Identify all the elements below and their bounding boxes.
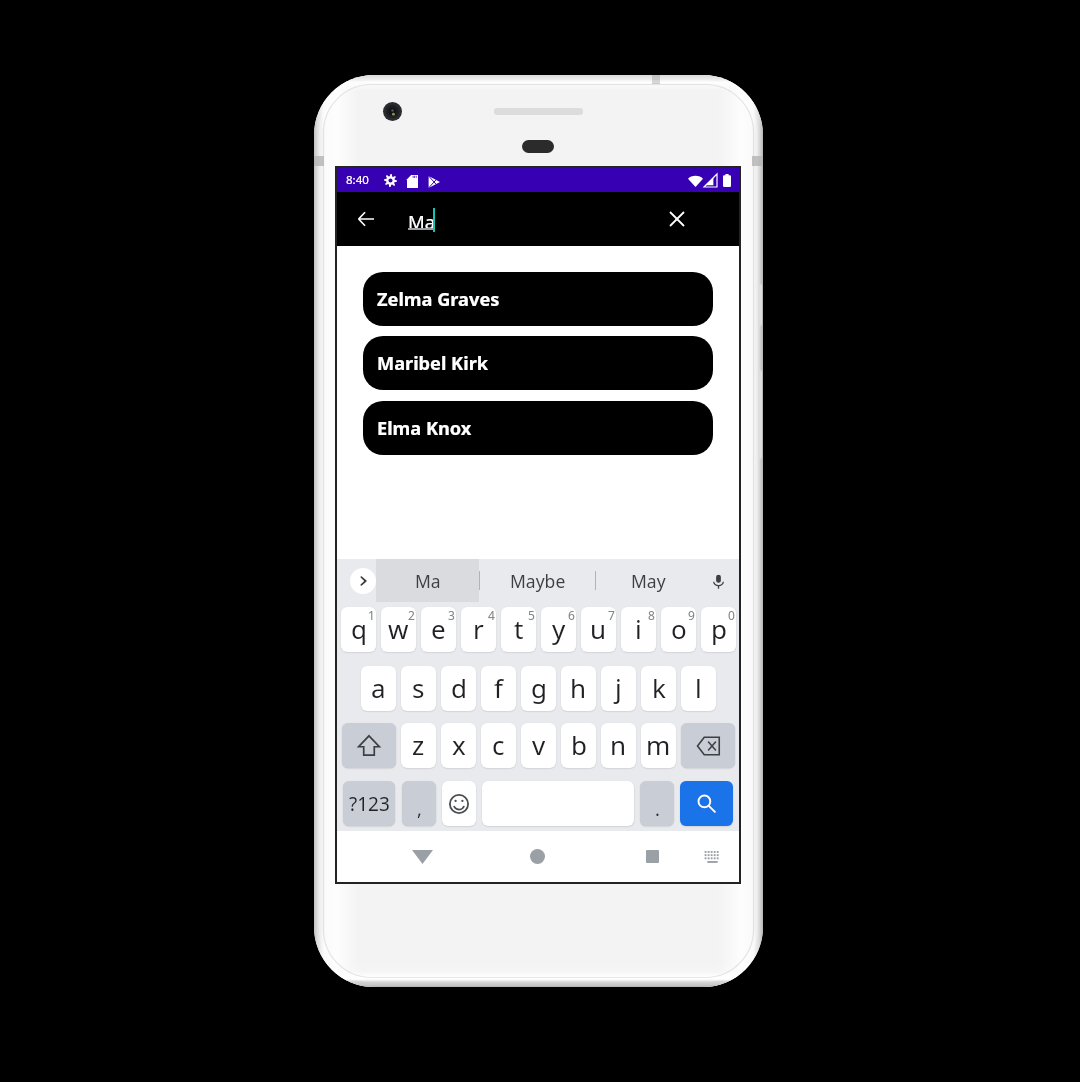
staticText: , xyxy=(417,797,422,822)
button[interactable]: b xyxy=(561,723,596,768)
button[interactable]: Shift xyxy=(342,723,396,768)
button[interactable]: May xyxy=(596,559,700,602)
button[interactable]: q xyxy=(341,607,376,652)
staticText: r xyxy=(473,611,484,646)
staticText: ?123 xyxy=(349,791,390,817)
staticText: m xyxy=(646,727,671,762)
staticText: 4 xyxy=(488,607,495,623)
staticText: y xyxy=(552,611,566,646)
staticText: q xyxy=(351,611,367,646)
staticText: Ma xyxy=(415,569,441,593)
button[interactable]: a xyxy=(361,666,396,711)
button[interactable]: Home xyxy=(507,831,567,882)
staticText: Zelma Graves xyxy=(377,287,500,312)
button[interactable]: Zelma Graves xyxy=(363,272,713,326)
button[interactable]: . xyxy=(640,781,674,826)
button[interactable]: g xyxy=(521,666,556,711)
button[interactable]: t xyxy=(501,607,536,652)
button[interactable]: y xyxy=(541,607,576,652)
staticText: 1 xyxy=(368,607,375,623)
staticText: u xyxy=(590,611,607,646)
staticText: 6 xyxy=(568,607,575,623)
staticText: s xyxy=(412,670,425,705)
staticText: c xyxy=(492,727,505,762)
staticText: n xyxy=(610,727,627,762)
staticText: k xyxy=(652,670,666,705)
button[interactable]: r xyxy=(461,607,496,652)
button[interactable]: Back xyxy=(392,831,452,882)
staticText: z xyxy=(412,727,425,762)
staticText: g xyxy=(531,670,547,705)
staticText: May xyxy=(631,569,666,593)
staticText: Ma xyxy=(408,209,436,234)
staticText: Maybe xyxy=(510,569,566,593)
button[interactable]: w xyxy=(381,607,416,652)
button[interactable]: i xyxy=(621,607,656,652)
button[interactable]: z xyxy=(401,723,436,768)
button[interactable]: u xyxy=(581,607,616,652)
button[interactable]: j xyxy=(601,666,636,711)
button[interactable]: Maribel Kirk xyxy=(363,336,713,390)
button[interactable]: k xyxy=(641,666,676,711)
staticText: i xyxy=(635,611,642,646)
button[interactable]: Search xyxy=(680,781,733,826)
button[interactable]: f xyxy=(481,666,516,711)
staticText: e xyxy=(431,611,446,646)
button[interactable]: c xyxy=(481,723,516,768)
staticText: 5 xyxy=(528,607,535,623)
button[interactable]: v xyxy=(521,723,556,768)
staticText: 2 xyxy=(408,607,415,623)
staticText: 9 xyxy=(688,607,695,623)
staticText: 3 xyxy=(448,607,455,623)
button[interactable]: Recent apps xyxy=(622,831,682,882)
staticText: t xyxy=(514,611,524,646)
button[interactable]: h xyxy=(561,666,596,711)
staticText: b xyxy=(571,727,587,762)
staticText: p xyxy=(711,611,727,646)
button[interactable]: Ma xyxy=(376,559,479,602)
staticText: h xyxy=(570,670,587,705)
button[interactable]: Voice input xyxy=(702,565,734,597)
button[interactable]: Switch keyboard xyxy=(687,831,737,882)
staticText: Elma Knox xyxy=(377,416,472,441)
button[interactable]: p xyxy=(701,607,736,652)
button[interactable]: Maybe xyxy=(479,559,596,602)
button[interactable]: e xyxy=(421,607,456,652)
staticText: x xyxy=(452,727,466,762)
staticText: f xyxy=(494,670,503,705)
button[interactable]: o xyxy=(661,607,696,652)
button[interactable]: Backspace xyxy=(681,723,735,768)
button[interactable]: , xyxy=(402,781,436,826)
staticText: 8 xyxy=(648,607,655,623)
button[interactable]: ?123 xyxy=(343,781,395,826)
button[interactable]: d xyxy=(441,666,476,711)
staticText: v xyxy=(532,727,546,762)
staticText: l xyxy=(695,670,702,705)
staticText: w xyxy=(388,611,409,646)
button[interactable]: Back xyxy=(349,202,383,236)
staticText: 8:40 xyxy=(346,172,369,188)
button[interactable]: n xyxy=(601,723,636,768)
button[interactable]: m xyxy=(641,723,676,768)
staticText: a xyxy=(371,670,386,705)
button[interactable]: Clear search xyxy=(660,202,694,236)
staticText: . xyxy=(655,797,660,822)
staticText: d xyxy=(451,670,467,705)
button[interactable]: More suggestions xyxy=(350,568,376,594)
button[interactable]: x xyxy=(441,723,476,768)
staticText: j xyxy=(615,670,622,705)
staticText: 0 xyxy=(728,607,735,623)
staticText: o xyxy=(671,611,687,646)
staticText: 7 xyxy=(608,607,615,623)
button[interactable]: l xyxy=(681,666,716,711)
button[interactable]: Emoji xyxy=(442,781,476,826)
staticText: Maribel Kirk xyxy=(377,351,489,376)
button[interactable]: s xyxy=(401,666,436,711)
button[interactable]: Elma Knox xyxy=(363,401,713,455)
